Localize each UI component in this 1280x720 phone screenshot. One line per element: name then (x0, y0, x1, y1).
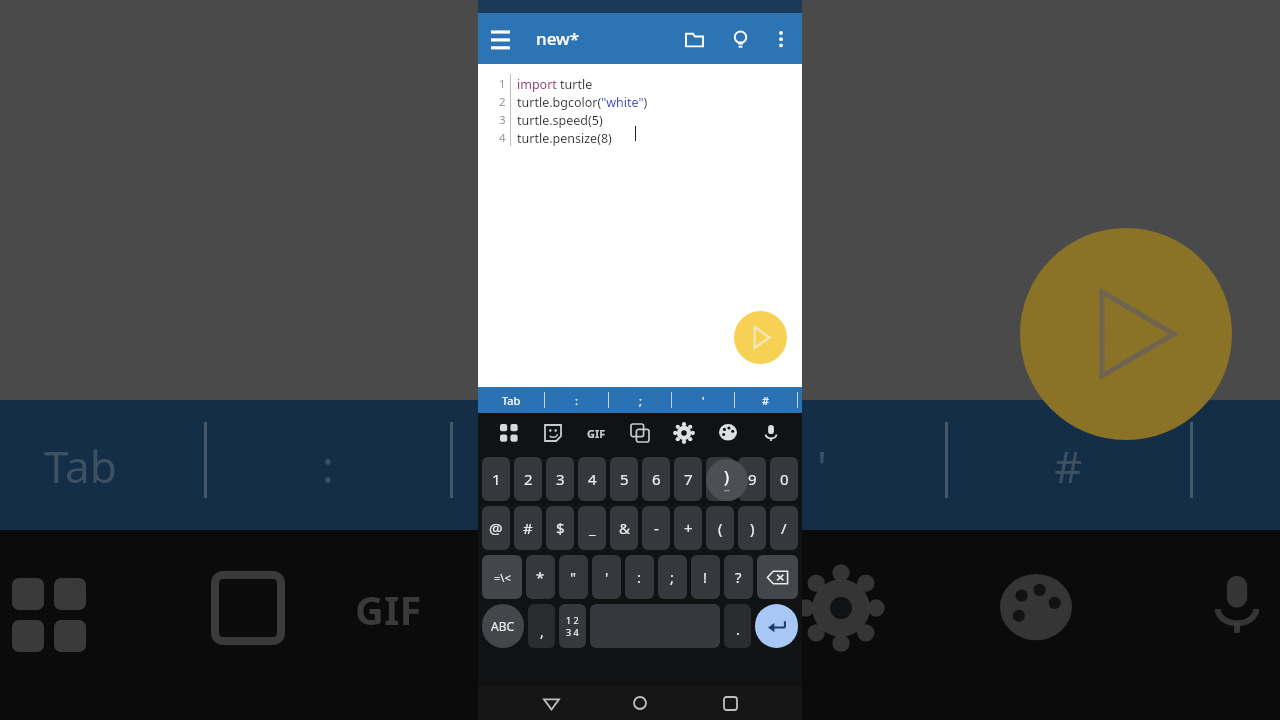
staticText: 1 2 (566, 614, 579, 626)
button[interactable]: Home (623, 686, 657, 720)
button[interactable]: - (642, 506, 670, 550)
staticText: ' (605, 567, 609, 587)
staticText: . (736, 620, 740, 639)
button[interactable]: # (735, 387, 797, 413)
button[interactable]: ABC (482, 604, 524, 648)
staticText: " (570, 567, 577, 587)
button[interactable]: Stickers (536, 416, 570, 450)
button[interactable]: Hints (720, 19, 760, 59)
button[interactable]: ) (738, 506, 766, 550)
staticText: $ (556, 518, 565, 538)
staticText: + (684, 518, 693, 538)
other: Enter (766, 616, 787, 637)
staticText: : (575, 393, 578, 408)
button[interactable]: 8 (706, 457, 734, 501)
staticText: 3 4 (566, 626, 579, 638)
button[interactable]: Open navigation menu (482, 21, 518, 57)
button[interactable]: =\< (482, 555, 522, 599)
staticText: ) (724, 465, 730, 488)
button[interactable]: : (625, 555, 654, 599)
button[interactable]: Voice input (754, 416, 788, 450)
staticText: 1 (499, 76, 506, 92)
button[interactable]: 9 (738, 457, 766, 501)
staticText: turtle.pensize(8) (517, 130, 612, 147)
staticText: ' (817, 436, 827, 496)
button[interactable]: 2 (514, 457, 542, 501)
staticText: 4 (588, 469, 597, 489)
staticText: 4 (499, 130, 506, 146)
button[interactable]: ! (691, 555, 720, 599)
staticText: 6 (652, 469, 661, 489)
button[interactable]: 0 (770, 457, 798, 501)
button[interactable]: Open file (674, 19, 714, 59)
staticText: ; (567, 436, 579, 496)
button[interactable]: " (559, 555, 588, 599)
button[interactable]: : (545, 387, 608, 413)
staticText: ? (735, 567, 742, 587)
button[interactable]: Backspace (757, 555, 798, 599)
staticText: 3 (556, 469, 565, 489)
other: Backspace (767, 567, 788, 588)
button[interactable]: 1 2 (559, 604, 586, 648)
staticText: ! (703, 567, 708, 587)
button[interactable]: ' (672, 387, 734, 413)
staticText: ; (639, 393, 642, 408)
button[interactable]: + (674, 506, 702, 550)
staticText: ) (750, 518, 755, 538)
button[interactable]: / (770, 506, 798, 550)
button[interactable]: Apps (492, 416, 526, 450)
staticText: new* (536, 27, 580, 50)
staticText: * (536, 567, 545, 587)
staticText: =\< (494, 570, 511, 585)
staticText: Tab (44, 436, 117, 496)
staticText: 5 (620, 469, 629, 489)
staticText: : (322, 436, 334, 496)
button[interactable]: , (528, 604, 555, 648)
staticText: : (637, 567, 642, 587)
staticText: ( (718, 518, 723, 538)
staticText: @ (489, 518, 503, 538)
button[interactable]: Tab (478, 387, 544, 413)
button[interactable]: $ (546, 506, 574, 550)
staticText: ' (702, 393, 705, 408)
button[interactable]: More options (762, 20, 800, 58)
staticText: # (762, 393, 770, 408)
button[interactable]: 1 (482, 457, 510, 501)
button[interactable]: * (526, 555, 555, 599)
staticText: 8 (716, 469, 725, 489)
button[interactable]: 6 (642, 457, 670, 501)
button[interactable]: _ (578, 506, 606, 550)
button[interactable]: ? (724, 555, 753, 599)
staticText: ••• (724, 488, 730, 495)
button[interactable]: . (724, 604, 751, 648)
staticText: 2 (499, 94, 506, 110)
button[interactable]: 5 (610, 457, 638, 501)
staticText: Tab (502, 393, 521, 408)
staticText: , (540, 622, 544, 641)
button[interactable]: 4 (578, 457, 606, 501)
button[interactable]: # (514, 506, 542, 550)
button[interactable]: Recents (713, 686, 747, 720)
button[interactable]: Run (734, 311, 787, 364)
staticText: - (654, 518, 659, 538)
button[interactable]: @ (482, 506, 510, 550)
button[interactable]: & (610, 506, 638, 550)
staticText: / (781, 518, 787, 538)
button[interactable]: ; (609, 387, 671, 413)
button[interactable]: 7 (674, 457, 702, 501)
staticText: 3 (499, 112, 506, 128)
button[interactable]: Translate (623, 416, 657, 450)
button[interactable]: GIF (579, 416, 613, 450)
button[interactable]: ; (658, 555, 687, 599)
button[interactable]: 3 (546, 457, 574, 501)
button[interactable]: Back (534, 686, 568, 720)
staticText: GIF (355, 582, 422, 636)
button[interactable]: ( (706, 506, 734, 550)
staticText: # (523, 518, 533, 538)
button[interactable]: Enter (755, 604, 798, 648)
button[interactable]: Settings (667, 416, 701, 450)
button[interactable]: Theme (711, 416, 745, 450)
button[interactable]: ' (592, 555, 621, 599)
